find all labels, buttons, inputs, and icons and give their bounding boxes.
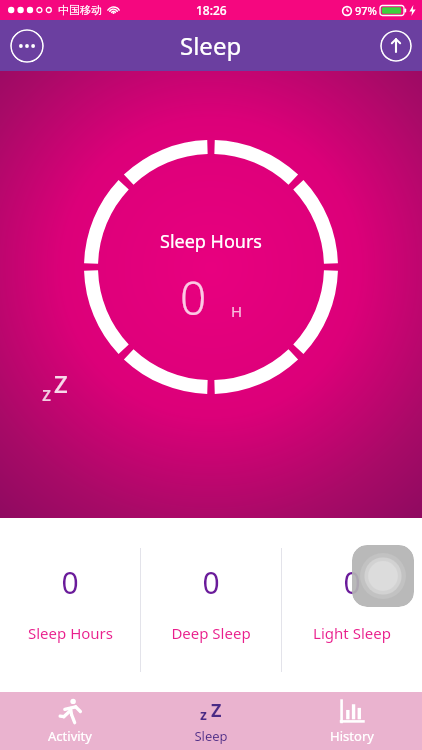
staticText: Activity xyxy=(48,727,92,745)
staticText: 中国移动 xyxy=(58,3,102,17)
button[interactable]: Activity xyxy=(0,692,140,750)
staticText: H xyxy=(231,301,243,321)
button[interactable]: Share xyxy=(380,30,412,62)
staticText: 0 xyxy=(343,562,361,603)
button[interactable]: More options xyxy=(10,29,44,63)
staticText: 0 xyxy=(202,562,220,603)
button[interactable]: 0 xyxy=(282,544,422,649)
staticText: History xyxy=(330,727,374,745)
staticText: Deep Sleep xyxy=(171,623,251,643)
staticText: z xyxy=(200,705,207,724)
staticText: Z xyxy=(211,698,222,723)
staticText: 18:26 xyxy=(196,2,227,18)
button[interactable]: AssistiveTouch xyxy=(352,545,414,607)
staticText: 0 xyxy=(180,266,207,329)
button[interactable]: 0 xyxy=(141,544,281,649)
staticText: z xyxy=(42,381,52,407)
staticText: Sleep Hours xyxy=(160,229,262,254)
staticText: 97% xyxy=(355,3,377,18)
staticText: Sleep xyxy=(180,29,242,62)
staticText: 0 xyxy=(61,562,79,603)
button[interactable]: z xyxy=(140,692,281,750)
button[interactable]: History xyxy=(281,692,422,750)
staticText: Z xyxy=(54,367,68,400)
staticText: Sleep xyxy=(194,727,228,745)
staticText: Light Sleep xyxy=(313,623,391,643)
button[interactable]: 0 xyxy=(0,544,140,649)
staticText: Sleep Hours xyxy=(28,623,113,643)
